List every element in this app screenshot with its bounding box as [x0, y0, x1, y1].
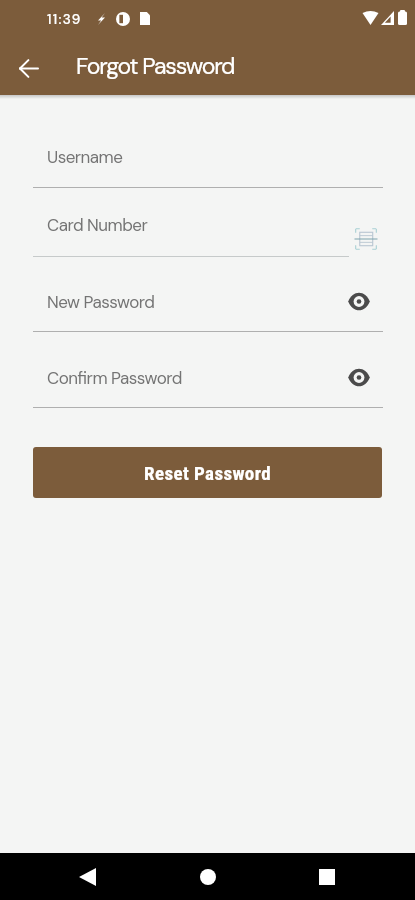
staticText: 11:39	[47, 11, 82, 29]
button[interactable]: Show password	[344, 286, 374, 316]
button[interactable]: Back	[62, 853, 112, 900]
button[interactable]: Username	[0, 143, 415, 193]
button[interactable]: Back	[6, 45, 52, 91]
button[interactable]: Confirm Password	[0, 363, 415, 413]
button[interactable]: Card Number	[0, 212, 415, 262]
button[interactable]: New Password	[0, 287, 415, 337]
staticText: New Password	[47, 291, 155, 313]
staticText: Username	[47, 146, 123, 168]
button[interactable]: Recent apps	[302, 853, 352, 900]
button[interactable]: Home	[183, 853, 233, 900]
staticText: Reset Password	[144, 462, 272, 484]
staticText: Confirm Password	[47, 367, 182, 389]
button[interactable]: Reset Password	[33, 447, 382, 498]
staticText: Forgot Password	[76, 51, 235, 81]
staticText: Card Number	[47, 214, 148, 236]
button[interactable]: Show password	[344, 362, 374, 392]
button[interactable]: Scan card	[351, 224, 381, 254]
